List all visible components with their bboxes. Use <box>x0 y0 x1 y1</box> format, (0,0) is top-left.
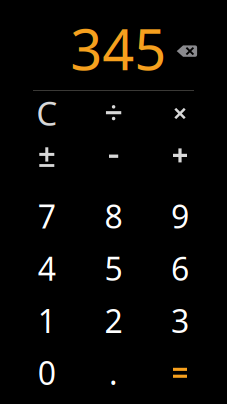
button[interactable]: Plus <box>147 134 213 177</box>
button[interactable]: 7 <box>13 190 80 242</box>
staticText: 1 <box>38 299 56 342</box>
button[interactable]: 5 <box>80 242 147 294</box>
staticText: 2 <box>105 299 123 342</box>
staticText: 3 <box>171 299 189 342</box>
button[interactable]: Plus or minus <box>13 136 80 179</box>
staticText: 5 <box>105 247 123 290</box>
staticText: 6 <box>171 247 189 290</box>
button[interactable]: Delete <box>168 36 206 66</box>
button[interactable]: 8 <box>80 190 147 242</box>
button[interactable]: Divide <box>80 91 147 134</box>
button[interactable]: 2 <box>80 295 147 347</box>
button[interactable]: Multiply <box>147 92 213 135</box>
button[interactable]: Minus <box>80 135 147 178</box>
button[interactable]: 0 <box>13 347 80 399</box>
staticText: C <box>36 91 57 135</box>
staticText: 7 <box>38 195 56 237</box>
staticText: 0 <box>38 351 56 394</box>
button[interactable]: C <box>13 91 80 134</box>
button[interactable]: 3 <box>147 295 213 347</box>
button[interactable]: 9 <box>147 190 213 242</box>
button[interactable]: 1 <box>13 295 80 347</box>
staticText: . <box>109 351 118 394</box>
button[interactable]: 6 <box>147 242 213 294</box>
button[interactable]: 4 <box>13 242 80 294</box>
staticText: 8 <box>105 195 123 237</box>
staticText: 4 <box>38 247 56 290</box>
staticText: 345 <box>70 11 166 86</box>
button[interactable]: Equals <box>147 347 213 399</box>
button[interactable]: . <box>80 347 147 399</box>
staticText: 9 <box>171 195 189 237</box>
